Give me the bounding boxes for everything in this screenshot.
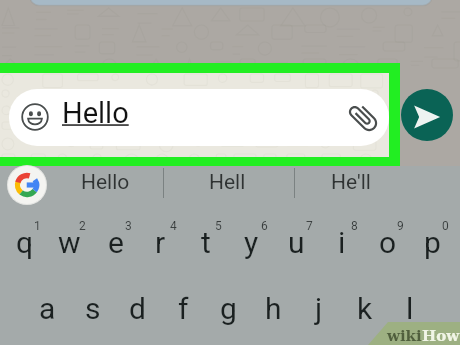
button[interactable]: w bbox=[47, 213, 92, 277]
button[interactable]: h bbox=[251, 279, 296, 343]
button[interactable]: g bbox=[206, 279, 251, 343]
staticText: 3 bbox=[125, 219, 132, 233]
button[interactable]: Attach file bbox=[346, 100, 381, 135]
staticText: y bbox=[244, 225, 259, 260]
button[interactable]: a bbox=[25, 279, 70, 343]
button[interactable]: t bbox=[183, 213, 228, 277]
staticText: 5 bbox=[215, 219, 222, 233]
button[interactable]: f bbox=[161, 279, 206, 343]
staticText: t bbox=[201, 225, 211, 260]
staticText: d bbox=[129, 291, 146, 326]
button[interactable]: d bbox=[115, 279, 160, 343]
button[interactable]: Hell bbox=[167, 166, 287, 199]
staticText: w bbox=[58, 225, 81, 260]
staticText: a bbox=[39, 291, 56, 326]
staticText: 4 bbox=[170, 219, 177, 233]
staticText: He'll bbox=[331, 170, 371, 195]
staticText: How bbox=[422, 327, 460, 345]
staticText: e bbox=[108, 225, 124, 260]
button[interactable]: Send bbox=[401, 89, 453, 141]
staticText: h bbox=[265, 291, 282, 326]
staticText: p bbox=[424, 225, 441, 260]
button[interactable]: p bbox=[410, 213, 455, 277]
button[interactable]: Google bbox=[7, 165, 47, 205]
button[interactable]: y bbox=[229, 213, 274, 277]
button[interactable]: Hello bbox=[9, 89, 389, 146]
button[interactable]: o bbox=[365, 213, 410, 277]
button[interactable]: j bbox=[296, 279, 341, 343]
button[interactable]: r bbox=[138, 213, 183, 277]
staticText: j bbox=[315, 291, 323, 326]
button[interactable]: i bbox=[319, 213, 364, 277]
button[interactable]: e bbox=[93, 213, 138, 277]
staticText: 9 bbox=[397, 219, 404, 233]
staticText: l bbox=[406, 291, 414, 326]
staticText: 1 bbox=[34, 219, 41, 233]
staticText: o bbox=[379, 225, 397, 260]
staticText: 7 bbox=[306, 219, 313, 233]
staticText: wiki bbox=[387, 327, 422, 345]
staticText: 0 bbox=[442, 219, 449, 233]
button[interactable]: Hello bbox=[45, 166, 165, 199]
staticText: Hello bbox=[62, 96, 129, 130]
staticText: Hello bbox=[81, 170, 130, 195]
button[interactable]: k bbox=[342, 279, 387, 343]
staticText: k bbox=[357, 291, 373, 326]
button[interactable]: l bbox=[387, 279, 432, 343]
staticText: 8 bbox=[351, 219, 358, 233]
staticText: s bbox=[85, 291, 101, 326]
staticText: g bbox=[220, 291, 237, 326]
staticText: f bbox=[178, 291, 189, 326]
staticText: 2 bbox=[79, 219, 86, 233]
staticText: i bbox=[338, 225, 346, 260]
staticText: u bbox=[288, 225, 305, 260]
button[interactable]: s bbox=[70, 279, 115, 343]
staticText: Hell bbox=[209, 170, 246, 195]
staticText: 6 bbox=[261, 219, 268, 233]
button[interactable]: u bbox=[274, 213, 319, 277]
staticText: q bbox=[16, 225, 34, 260]
button[interactable]: q bbox=[2, 213, 47, 277]
staticText: r bbox=[155, 225, 166, 260]
button[interactable]: He'll bbox=[291, 166, 411, 199]
